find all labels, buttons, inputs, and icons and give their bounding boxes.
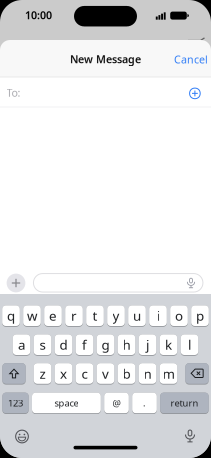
staticText: o [175, 307, 183, 324]
button[interactable]: t [86, 305, 104, 327]
staticText: 123 [8, 397, 23, 409]
button[interactable]: j [139, 334, 156, 356]
staticText: r [71, 307, 77, 324]
staticText: v [102, 365, 109, 382]
button[interactable]: h [118, 334, 135, 356]
button[interactable]: m [160, 363, 177, 385]
staticText: l [188, 336, 191, 353]
button[interactable]: y [107, 305, 125, 327]
button[interactable]: e [44, 305, 62, 327]
staticText: f [82, 336, 87, 353]
staticText: c [81, 365, 87, 382]
staticText: . [143, 397, 146, 409]
staticText: s [39, 336, 45, 353]
button[interactable]: g [97, 334, 114, 356]
button[interactable]: s [34, 334, 51, 356]
button[interactable]: i [149, 305, 167, 327]
button[interactable]: Cancel [174, 52, 208, 66]
staticText: n [143, 365, 151, 382]
button[interactable]: b [118, 363, 135, 385]
staticText: a [18, 336, 25, 353]
button[interactable]: f [76, 334, 93, 356]
staticText: g [101, 336, 109, 353]
staticText: return [170, 397, 198, 409]
button[interactable]: p [191, 305, 209, 327]
staticText: p [196, 307, 204, 324]
staticText: k [165, 336, 172, 353]
button[interactable]: Dictation [185, 429, 195, 442]
button[interactable]: w [23, 305, 41, 327]
staticText: b [122, 365, 130, 382]
staticText: 10:00 [25, 8, 52, 22]
staticText: d [59, 336, 67, 353]
staticText: New Message [70, 52, 141, 66]
staticText: j [146, 336, 149, 353]
staticText: i [156, 307, 159, 324]
staticText: h [122, 336, 130, 353]
button[interactable]: Apps [6, 273, 25, 292]
button[interactable]: Add Contact [188, 87, 201, 100]
staticText: e [49, 307, 57, 324]
staticText: x [60, 365, 67, 382]
button[interactable]: @ [104, 393, 129, 414]
button[interactable]: o [170, 305, 188, 327]
button[interactable]: c [76, 363, 93, 385]
button[interactable]: n [139, 363, 156, 385]
button[interactable]: Delete [185, 363, 209, 385]
staticText: q [7, 307, 15, 324]
button[interactable]: . [132, 393, 157, 414]
button[interactable]: Shift [2, 363, 26, 385]
button[interactable]: u [128, 305, 146, 327]
staticText: z [39, 365, 45, 382]
button[interactable]: l [181, 334, 198, 356]
button[interactable]: v [97, 363, 114, 385]
staticText: y [112, 307, 119, 324]
button[interactable]: Emoji [15, 430, 29, 443]
staticText: space [54, 397, 78, 409]
button[interactable]: Message [33, 273, 203, 293]
staticText: u [133, 307, 141, 324]
staticText: m [162, 365, 174, 382]
button[interactable]: Dictation [187, 278, 195, 288]
staticText: To: [7, 86, 21, 100]
button[interactable]: k [160, 334, 177, 356]
button[interactable]: d [55, 334, 72, 356]
button[interactable]: x [55, 363, 72, 385]
staticText: w [27, 307, 37, 324]
button[interactable]: r [65, 305, 83, 327]
button[interactable]: q [2, 305, 20, 327]
staticText: @ [112, 397, 120, 409]
button[interactable]: a [13, 334, 30, 356]
button[interactable]: space [32, 393, 101, 414]
staticText: Cancel [174, 52, 208, 66]
button[interactable]: return [160, 393, 209, 414]
staticText: t [92, 307, 97, 324]
button[interactable]: 123 [2, 393, 29, 414]
button[interactable]: z [34, 363, 51, 385]
